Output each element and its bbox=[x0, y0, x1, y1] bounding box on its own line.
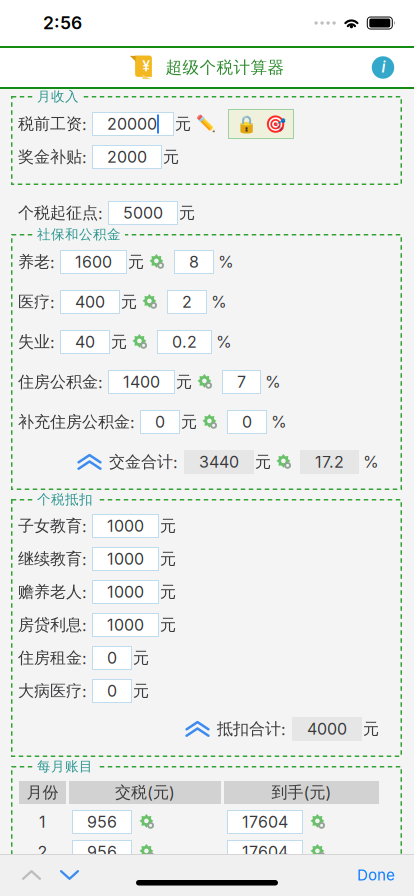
staticText: 交税(元) bbox=[115, 782, 175, 803]
staticText: 0 bbox=[107, 681, 117, 701]
staticText: 奖金补贴: bbox=[18, 147, 87, 167]
staticText: 7 bbox=[237, 372, 246, 392]
staticText: 住房租金: bbox=[18, 648, 87, 668]
staticText: 医疗: bbox=[18, 292, 55, 312]
staticText: 5000 bbox=[123, 203, 163, 223]
staticText: 🎯 bbox=[265, 114, 286, 134]
staticText: 个税抵扣 bbox=[37, 491, 93, 508]
staticText: 2 bbox=[37, 842, 47, 862]
staticText: 元 bbox=[179, 203, 195, 223]
staticText: 到手(元) bbox=[271, 782, 331, 803]
staticText: 元 bbox=[121, 292, 137, 312]
staticText: 养老: bbox=[18, 252, 55, 272]
staticText: 元 bbox=[160, 549, 176, 569]
staticText: 子女教育: bbox=[18, 516, 87, 536]
button[interactable]: Edit salary bbox=[191, 115, 216, 133]
staticText: i bbox=[381, 58, 385, 76]
staticText: 1000 bbox=[107, 582, 144, 602]
staticText: % bbox=[211, 292, 227, 312]
staticText: 8 bbox=[189, 252, 199, 272]
staticText: 住房公积金: bbox=[18, 372, 103, 392]
staticText: 补充住房公积金: bbox=[18, 412, 135, 432]
staticText: 社保和公积金 bbox=[37, 226, 121, 243]
staticText: 1 bbox=[39, 812, 46, 832]
staticText: 4000 bbox=[307, 719, 347, 739]
staticText: 元 bbox=[160, 516, 176, 536]
staticText: 失业: bbox=[18, 332, 55, 352]
button[interactable]: Next field bbox=[50, 854, 88, 896]
staticText: 1000 bbox=[107, 516, 144, 536]
staticText: 0 bbox=[242, 412, 252, 432]
staticText: 月份 bbox=[26, 782, 58, 803]
staticText: 2 bbox=[182, 292, 192, 312]
staticText: 17.2 bbox=[315, 452, 344, 472]
staticText: 元 bbox=[176, 372, 192, 392]
staticText: 元 bbox=[111, 332, 127, 352]
staticText: 房贷利息: bbox=[18, 615, 87, 635]
staticText: 交金合计: bbox=[109, 452, 178, 472]
staticText: 1600 bbox=[75, 252, 112, 272]
staticText: 3440 bbox=[199, 452, 239, 472]
staticText: 0 bbox=[155, 412, 165, 432]
staticText: 继续教育: bbox=[18, 549, 87, 569]
button[interactable]: Set target bbox=[265, 114, 286, 134]
staticText: % bbox=[216, 332, 232, 352]
button[interactable]: Lock salary bbox=[236, 114, 257, 134]
staticText: 2000 bbox=[107, 147, 147, 167]
staticText: 🔒 bbox=[236, 114, 257, 134]
button[interactable]: Previous field bbox=[12, 854, 50, 896]
staticText: Done bbox=[357, 866, 395, 884]
staticText: 元 bbox=[363, 719, 379, 739]
staticText: 元 bbox=[175, 114, 191, 134]
staticText: 40 bbox=[75, 332, 95, 352]
staticText: 元 bbox=[255, 452, 271, 472]
staticText: 17604 bbox=[242, 842, 288, 862]
staticText: 元 bbox=[160, 615, 176, 635]
staticText: 956 bbox=[87, 812, 117, 832]
staticText: 个税起征点: bbox=[18, 203, 103, 223]
staticText: 每月账目 bbox=[37, 758, 93, 775]
staticText: 元 bbox=[163, 147, 179, 167]
staticText: 赡养老人: bbox=[18, 582, 87, 602]
staticText: 0.2 bbox=[172, 332, 197, 352]
staticText: 元 bbox=[128, 252, 144, 272]
staticText: 元 bbox=[160, 582, 176, 602]
staticText: 0 bbox=[107, 648, 117, 668]
button[interactable]: Done bbox=[343, 854, 409, 896]
staticText: 元 bbox=[181, 412, 197, 432]
staticText: 20000 bbox=[107, 114, 157, 134]
staticText: 2:56 bbox=[43, 12, 82, 34]
staticText: 1000 bbox=[107, 615, 144, 635]
staticText: 956 bbox=[87, 842, 117, 862]
staticText: 元 bbox=[133, 681, 149, 701]
staticText: 大病医疗: bbox=[18, 681, 87, 701]
staticText: ✏️ bbox=[196, 115, 216, 133]
staticText: ¥ bbox=[142, 58, 150, 75]
staticText: % bbox=[363, 452, 379, 472]
staticText: 1400 bbox=[123, 372, 160, 392]
staticText: 抵扣合计: bbox=[217, 719, 286, 739]
staticText: 超级个税计算器 bbox=[165, 57, 284, 78]
button[interactable]: About bbox=[368, 52, 398, 82]
staticText: 17604 bbox=[242, 812, 288, 832]
staticText: % bbox=[265, 372, 281, 392]
staticText: 1000 bbox=[107, 549, 144, 569]
staticText: 400 bbox=[75, 292, 105, 312]
staticText: 月收入 bbox=[37, 88, 79, 105]
staticText: % bbox=[218, 252, 234, 272]
staticText: % bbox=[271, 412, 287, 432]
staticText: 税前工资: bbox=[18, 114, 87, 134]
staticText: 元 bbox=[133, 648, 149, 668]
